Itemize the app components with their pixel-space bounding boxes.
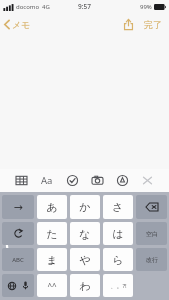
staticText: や	[79, 253, 91, 267]
staticText: docomo	[16, 3, 40, 11]
staticText: ま	[46, 253, 58, 267]
staticText: な	[79, 227, 91, 241]
staticText: ABC	[12, 256, 24, 264]
staticText: ^^	[47, 280, 57, 291]
button[interactable]: あ	[37, 195, 67, 219]
staticText: 空白	[146, 230, 158, 238]
button[interactable]: か	[70, 195, 100, 219]
button[interactable]: は	[103, 222, 133, 245]
staticText: 完了	[144, 19, 162, 30]
staticText: た	[46, 227, 58, 241]
staticText: Aa	[41, 174, 53, 187]
staticText: あ	[46, 200, 58, 214]
button[interactable]: globemic	[2, 274, 34, 297]
button[interactable]: た	[37, 222, 67, 245]
button[interactable]: ABC	[2, 248, 34, 271]
staticText: メモ	[12, 19, 31, 30]
button[interactable]: ら	[103, 248, 133, 271]
staticText: 9:57	[78, 2, 91, 11]
button[interactable]: さ	[103, 195, 133, 219]
staticText: わ	[79, 279, 91, 293]
button[interactable]: Aa	[39, 172, 55, 189]
button[interactable]: →	[2, 195, 34, 219]
button[interactable]: 、。?!	[103, 274, 133, 297]
staticText: ら	[112, 253, 124, 267]
button[interactable]: Share	[120, 15, 137, 34]
button[interactable]: 改行	[136, 248, 167, 271]
button[interactable]: Camera	[90, 173, 105, 188]
button[interactable]: わ	[70, 274, 100, 297]
button[interactable]: Close	[140, 173, 155, 188]
button[interactable]: な	[70, 222, 100, 245]
button[interactable]: Table	[14, 173, 29, 188]
button[interactable]: 空白	[136, 222, 167, 245]
button[interactable]: delete	[136, 195, 167, 219]
staticText: 改行	[146, 256, 158, 264]
staticText: 4G	[42, 3, 50, 11]
button[interactable]: Checklist	[65, 173, 80, 188]
button[interactable]: Markup	[115, 173, 130, 188]
staticText: 99%	[140, 3, 152, 11]
button[interactable]: メモ	[0, 16, 37, 33]
button[interactable]: undo	[2, 222, 34, 245]
button[interactable]: ^^	[37, 274, 67, 297]
button[interactable]: や	[70, 248, 100, 271]
staticText: さ	[112, 200, 124, 214]
button[interactable]: ま	[37, 248, 67, 271]
staticText: は	[112, 227, 124, 241]
staticText: 、。?!	[110, 282, 127, 290]
staticText: →	[13, 201, 23, 214]
staticText: か	[79, 200, 91, 214]
button[interactable]: 完了	[141, 16, 165, 33]
